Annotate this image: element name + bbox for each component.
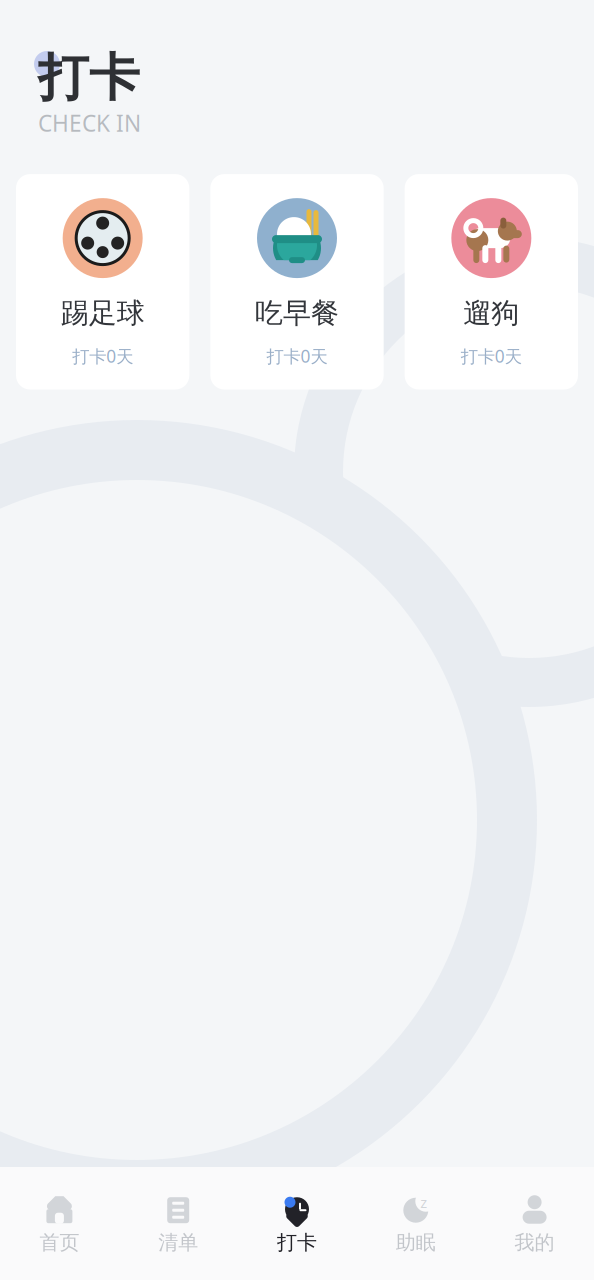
button[interactable]: 清单 bbox=[119, 1182, 238, 1265]
button[interactable]: 遛狗 bbox=[405, 174, 578, 389]
staticText: 首页 bbox=[39, 1230, 79, 1255]
button[interactable]: 踢足球 bbox=[16, 174, 189, 389]
staticText: 打卡0天 bbox=[266, 344, 327, 367]
staticText: 清单 bbox=[158, 1230, 198, 1255]
staticText: 打卡 bbox=[38, 47, 140, 109]
staticText: 打卡 bbox=[277, 1230, 317, 1255]
staticText: 打卡0天 bbox=[461, 344, 522, 367]
button[interactable]: 首页 bbox=[0, 1182, 119, 1265]
staticText: 打卡0天 bbox=[72, 344, 133, 367]
button[interactable]: 我的 bbox=[475, 1182, 594, 1265]
staticText: 助眠 bbox=[396, 1230, 436, 1255]
staticText: 踢足球 bbox=[61, 296, 145, 330]
staticText: z bbox=[420, 1192, 427, 1212]
button[interactable]: 打卡 bbox=[238, 1182, 356, 1265]
staticText: 吃早餐 bbox=[255, 296, 339, 330]
button[interactable]: 吃早餐 bbox=[210, 174, 384, 389]
button[interactable]: z bbox=[356, 1182, 475, 1265]
staticText: CHECK IN bbox=[38, 108, 141, 138]
staticText: 我的 bbox=[515, 1230, 555, 1255]
staticText: 遛狗 bbox=[463, 296, 519, 330]
